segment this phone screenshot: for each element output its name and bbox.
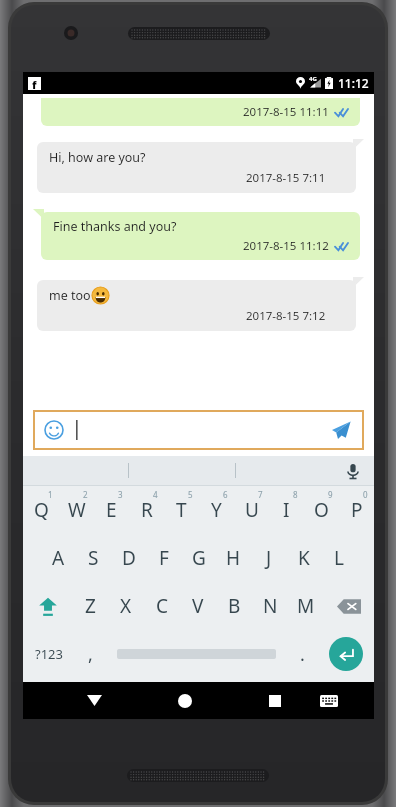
button[interactable]: R (129, 486, 164, 534)
staticText: 3 (118, 489, 123, 500)
staticText: 6 (223, 489, 228, 500)
staticText: 0 (363, 489, 368, 500)
staticText: U (245, 497, 259, 523)
staticText: K (298, 545, 310, 571)
button[interactable]: J (251, 534, 286, 582)
button[interactable]: Q (23, 486, 59, 534)
button[interactable]: Hi, how are you? (37, 142, 356, 193)
staticText: N (263, 593, 278, 619)
button[interactable]: F (146, 534, 181, 582)
button[interactable]: Space (106, 630, 287, 678)
staticText: 8 (293, 489, 298, 500)
staticText: 7 (258, 489, 263, 500)
staticText: Z (85, 593, 96, 619)
staticText: 2017-8-15 7:11 (246, 170, 326, 186)
staticText: A (52, 545, 65, 571)
staticText: 4 (153, 489, 158, 500)
button[interactable]: Back (73, 682, 116, 719)
button[interactable]: ?123 (23, 630, 75, 678)
staticText: I (283, 497, 290, 523)
staticText: B (228, 593, 241, 619)
button[interactable]: P (339, 486, 374, 534)
button[interactable]: Recent apps (253, 682, 296, 719)
other: Facebook notification (28, 77, 41, 90)
staticText: S (88, 545, 99, 571)
button[interactable]: A (41, 534, 76, 582)
button[interactable]: Keyboard (307, 682, 350, 719)
staticText: 2017-8-15 7:12 (246, 308, 326, 324)
staticText: V (192, 593, 204, 619)
staticText: Fine thanks and you? (53, 218, 177, 235)
button[interactable]: C (144, 582, 180, 630)
button[interactable]: N (252, 582, 288, 630)
staticText: . (300, 642, 305, 667)
staticText: Hi, how are you? (49, 149, 146, 166)
staticText: 2017-8-15 11:11 (243, 104, 329, 120)
staticText: 9 (328, 489, 333, 500)
staticText: 4G (309, 75, 317, 83)
button[interactable]: W (59, 486, 94, 534)
staticText: 11:12 (338, 75, 369, 91)
staticText: X (120, 593, 132, 619)
button[interactable]: I (269, 486, 304, 534)
button[interactable]: Voice input (342, 460, 364, 482)
button[interactable]: Home (163, 682, 206, 719)
staticText: , (88, 642, 93, 667)
button[interactable]: T (164, 486, 199, 534)
button[interactable]: Backspace (324, 582, 374, 630)
staticText: 2 (83, 489, 88, 500)
button[interactable]: H (216, 534, 251, 582)
button[interactable]: B (216, 582, 252, 630)
staticText: T (176, 497, 187, 523)
button[interactable]: Emoji (33, 410, 364, 450)
button[interactable]: M (288, 582, 324, 630)
button[interactable]: Z (72, 582, 108, 630)
button[interactable]: L (321, 534, 356, 582)
staticText: J (266, 545, 272, 571)
button[interactable]: , (75, 630, 106, 678)
staticText: P (351, 497, 363, 523)
staticText: H (226, 545, 241, 571)
staticText: 1 (48, 489, 53, 500)
button[interactable]: 2017-8-15 11:11 (41, 98, 360, 126)
button[interactable]: Y (199, 486, 234, 534)
button[interactable]: D (111, 534, 146, 582)
button[interactable]: E (94, 486, 129, 534)
staticText: Y (211, 497, 222, 523)
button[interactable]: G (181, 534, 216, 582)
staticText: C (156, 593, 169, 619)
staticText: Q (34, 497, 49, 523)
staticText: E (106, 497, 117, 523)
button[interactable]: O (304, 486, 339, 534)
button[interactable]: K (286, 534, 321, 582)
button[interactable]: X (108, 582, 144, 630)
button[interactable]: Emoji (44, 420, 64, 440)
button[interactable]: Fine thanks and you? (41, 212, 360, 260)
staticText: f (32, 77, 37, 90)
staticText: G (192, 545, 206, 571)
button[interactable]: U (234, 486, 269, 534)
staticText: D (122, 545, 136, 571)
button[interactable]: . (287, 630, 318, 678)
button[interactable]: Shift (23, 582, 72, 630)
staticText: L (334, 545, 344, 571)
staticText: O (314, 497, 329, 523)
button[interactable]: Send (323, 415, 353, 445)
staticText: me too (49, 287, 91, 304)
staticText: R (141, 497, 153, 523)
staticText: M (297, 593, 315, 619)
staticText: F (159, 545, 169, 571)
staticText: 2017-8-15 11:12 (243, 238, 329, 254)
button[interactable]: S (76, 534, 111, 582)
button[interactable]: me too (37, 280, 356, 331)
staticText: 5 (188, 489, 193, 500)
staticText: W (68, 497, 86, 523)
button[interactable]: Enter (318, 630, 374, 678)
staticText: ?123 (35, 645, 63, 663)
button[interactable]: V (180, 582, 216, 630)
